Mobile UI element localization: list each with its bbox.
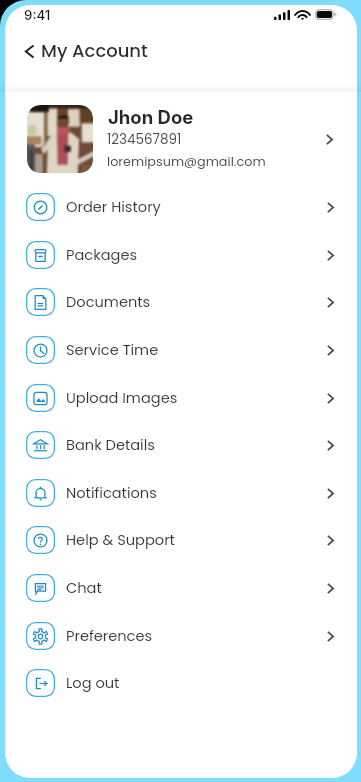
button[interactable]: Chat <box>0 564 361 612</box>
button[interactable]: Service Time <box>0 326 361 374</box>
button[interactable]: Log out <box>0 659 361 707</box>
staticText: loremipsum@gmail.com <box>107 153 266 171</box>
staticText: Jhon Doe <box>108 106 194 128</box>
staticText: Order History <box>66 197 161 217</box>
button[interactable]: Jhon Doe <box>0 101 361 183</box>
staticText: Chat <box>66 578 102 598</box>
staticText: Upload Images <box>66 388 178 408</box>
staticText: Documents <box>66 292 151 312</box>
button[interactable]: Packages <box>0 231 361 279</box>
button[interactable]: Bank Details <box>0 421 361 469</box>
staticText: Help & Support <box>66 530 175 550</box>
staticText: Preferences <box>66 626 153 646</box>
button[interactable]: Back <box>13 36 45 66</box>
staticText: My Account <box>41 38 148 63</box>
staticText: Notifications <box>66 483 157 503</box>
button[interactable]: Order History <box>0 183 361 231</box>
button[interactable]: Notifications <box>0 469 361 517</box>
staticText: Packages <box>66 245 138 265</box>
staticText: 9:41 <box>24 7 51 23</box>
staticText: Service Time <box>66 340 159 360</box>
button[interactable]: Upload Images <box>0 374 361 422</box>
button[interactable]: Documents <box>0 278 361 326</box>
staticText: Bank Details <box>66 435 155 455</box>
button[interactable]: Help & Support <box>0 516 361 564</box>
staticText: 1234567891 <box>107 130 182 149</box>
button[interactable]: Preferences <box>0 612 361 660</box>
staticText: Log out <box>66 673 120 693</box>
